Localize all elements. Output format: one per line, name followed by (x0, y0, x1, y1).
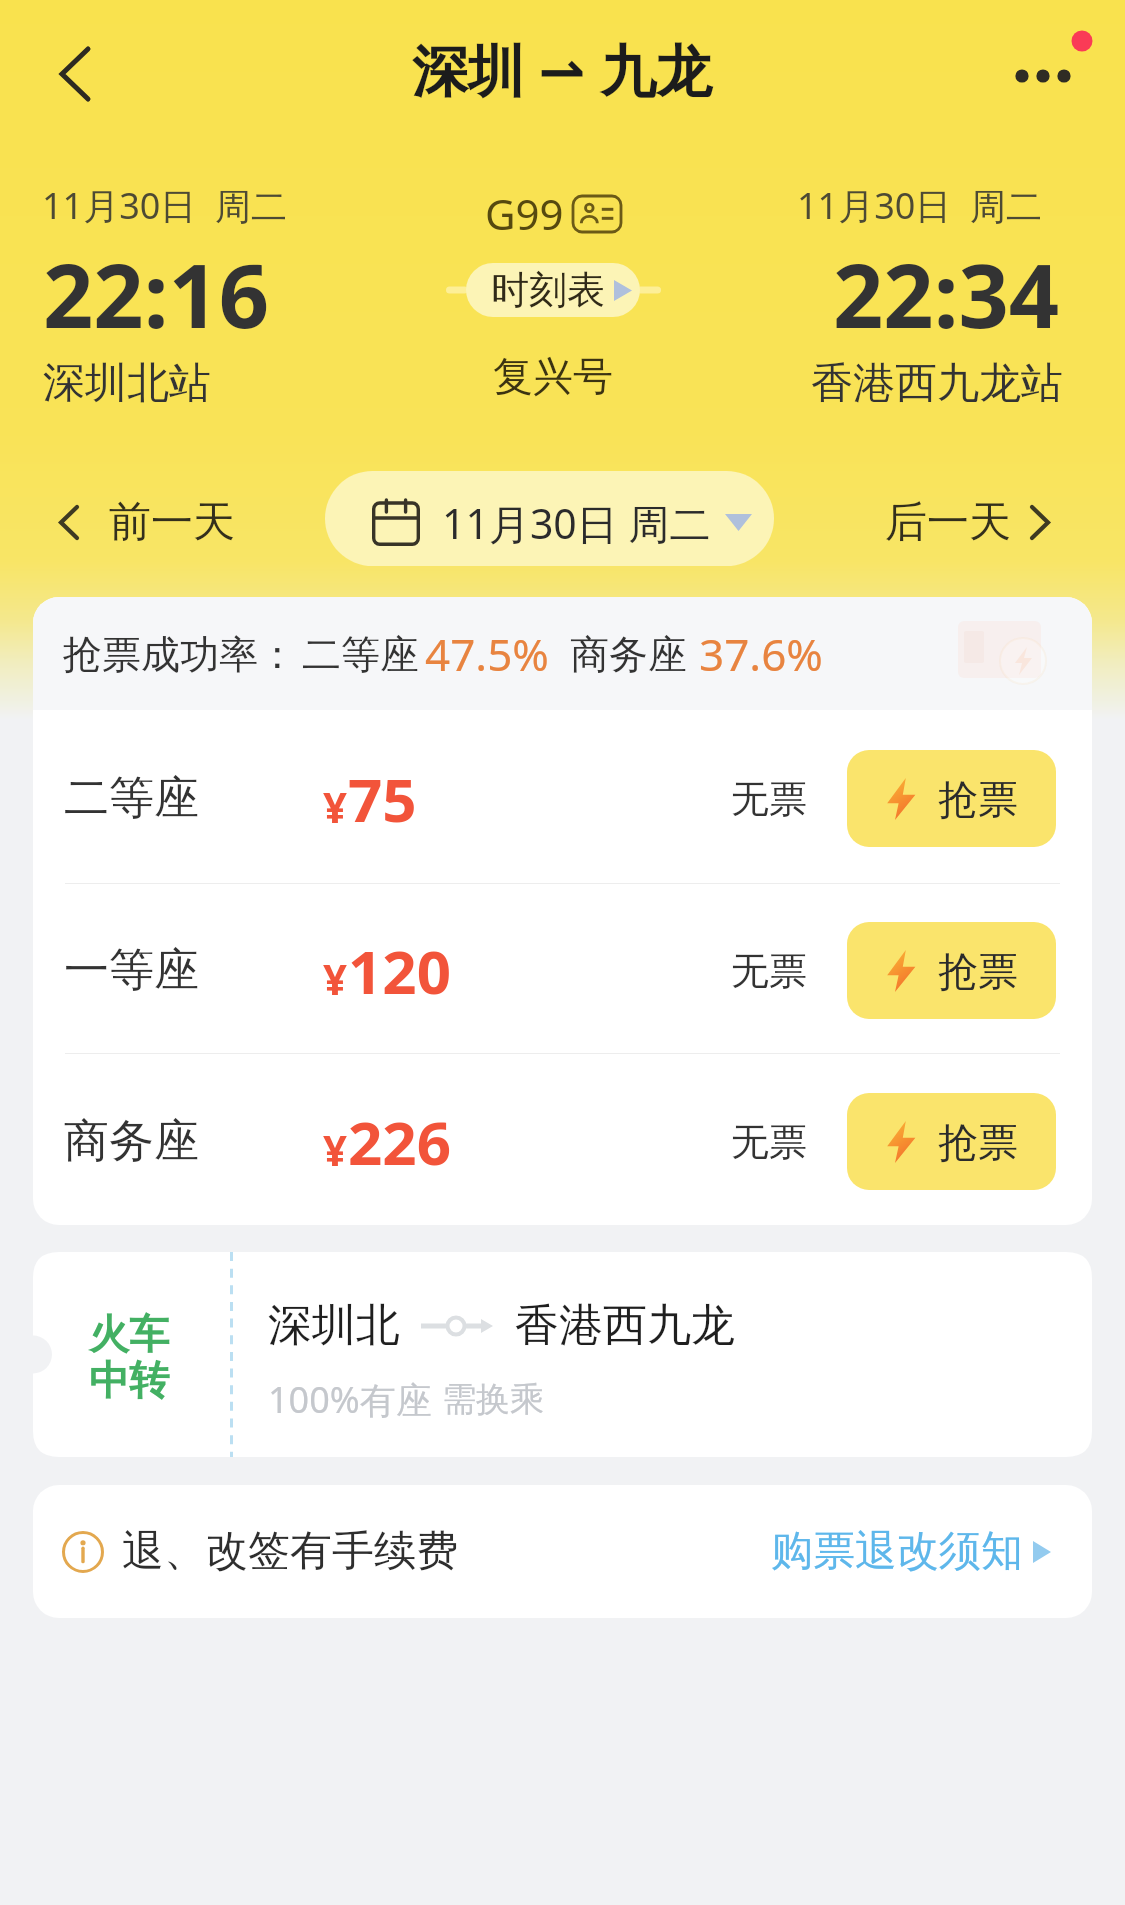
staticText: 抢票成功率： (63, 630, 297, 679)
staticText: ¥ (323, 950, 348, 1007)
button[interactable]: Back (24, 24, 116, 116)
staticText: 47.5% (425, 624, 549, 684)
staticText: 75 (348, 758, 417, 840)
button[interactable]: 商务座 (33, 1054, 1092, 1225)
staticText: 抢票 (938, 774, 1018, 824)
staticText: 香港西九龙站 (811, 357, 1063, 410)
staticText: 抢票 (938, 946, 1018, 996)
staticText: 退、改签有手续费 (122, 1525, 458, 1578)
staticText: 复兴号 (493, 351, 613, 401)
button[interactable]: 抢票 (847, 1093, 1056, 1190)
button[interactable]: 抢票 (847, 922, 1056, 1019)
staticText: 时刻表 (491, 266, 605, 314)
staticText: 商务座 (570, 630, 687, 679)
staticText: 11月30日 周二 (42, 181, 288, 230)
button[interactable]: 火车 (33, 1252, 1092, 1457)
staticText: 37.6% (699, 624, 823, 684)
staticText: 后一天 (885, 496, 1011, 549)
staticText: 120 (348, 930, 451, 1012)
button[interactable]: 一等座 (33, 884, 1092, 1053)
staticText: 商务座 (64, 1113, 199, 1170)
staticText: 需换乘 (442, 1378, 544, 1421)
staticText: 无票 (731, 1118, 807, 1166)
staticText: 前一天 (109, 496, 235, 549)
staticText: 深圳北 (268, 1298, 400, 1353)
button[interactable]: 前一天 (47, 482, 249, 563)
button[interactable]: 11月30日 周二 (325, 471, 774, 566)
staticText: 100%有座 (268, 1375, 432, 1424)
button[interactable]: 抢票成功率： (33, 597, 1092, 710)
staticText: 二等座 (64, 770, 199, 827)
staticText: 无票 (731, 775, 807, 823)
staticText: 二等座 (302, 630, 419, 679)
staticText: 11月30日 周二 (797, 181, 1043, 230)
staticText: 中转 (89, 1355, 169, 1405)
staticText: 22:16 (43, 234, 270, 354)
staticText: 火车 (89, 1309, 169, 1359)
staticText: 香港西九龙 (515, 1298, 735, 1353)
button[interactable]: 二等座 (33, 710, 1092, 883)
staticText: 11月30日 周二 (442, 495, 711, 551)
staticText: 226 (348, 1101, 451, 1183)
staticText: G99 (485, 185, 564, 242)
button[interactable]: 后一天 (871, 482, 1062, 563)
staticText: 22:34 (833, 234, 1060, 354)
staticText: 抢票 (938, 1117, 1018, 1167)
button[interactable]: 退、改签有手续费 (33, 1485, 1092, 1618)
staticText: ¥ (323, 778, 348, 835)
staticText: 一等座 (64, 942, 199, 999)
button[interactable]: 抢票 (847, 750, 1056, 847)
staticText: 无票 (731, 947, 807, 995)
button[interactable]: 时刻表 (466, 263, 640, 317)
button[interactable]: More options (993, 0, 1113, 115)
staticText: 购票退改须知 (771, 1525, 1023, 1578)
staticText: ¥ (323, 1121, 348, 1178)
staticText: 深圳北站 (43, 357, 211, 410)
staticText: 深圳 ⇀ 九龙 (412, 31, 713, 107)
